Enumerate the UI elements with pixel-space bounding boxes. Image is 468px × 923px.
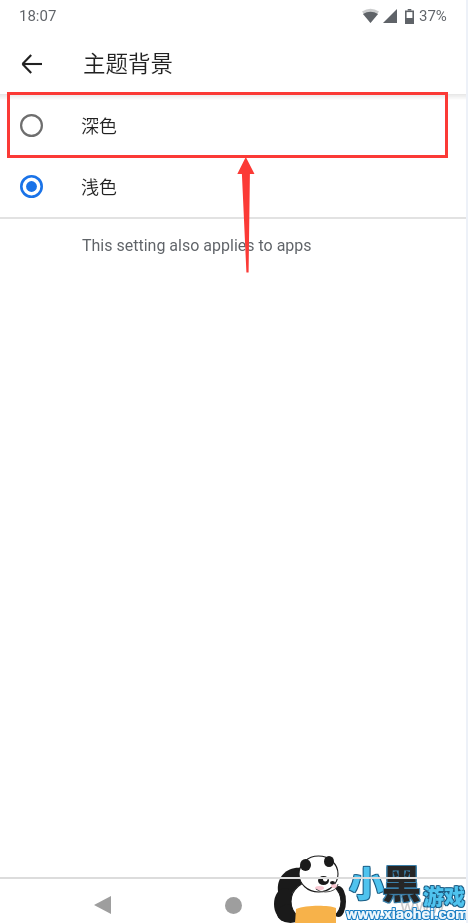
staticText: 37% xyxy=(419,7,447,25)
staticText: 戏 xyxy=(443,879,464,909)
staticText: 黑 xyxy=(383,853,423,909)
staticText: www.xiaohei.com xyxy=(347,905,468,923)
staticText: 18:07 xyxy=(19,7,57,25)
staticText: 主题背景 xyxy=(83,46,174,79)
staticText: www.xiaohei.com xyxy=(347,904,468,922)
staticText: 黑 xyxy=(382,854,422,910)
staticText: 游 xyxy=(422,880,443,910)
staticText: www.xiaohei.com xyxy=(347,906,468,923)
staticText: 黑 xyxy=(381,853,421,909)
staticText: 游 xyxy=(423,881,444,911)
staticText: www.xiaohei.com xyxy=(346,904,468,922)
staticText: 小 xyxy=(349,855,385,906)
staticText: 戏 xyxy=(444,880,465,910)
staticText: www.xiaohei.com xyxy=(346,905,468,923)
staticText: 游 xyxy=(424,880,445,910)
staticText: 黑 xyxy=(381,854,421,910)
staticText: 游 xyxy=(423,880,444,910)
staticText: 小 xyxy=(349,857,385,908)
staticText: www.xiaohei.com xyxy=(345,904,468,922)
staticText: 黑 xyxy=(383,852,423,908)
staticText: 游 xyxy=(422,881,443,911)
button[interactable]: Home xyxy=(213,885,253,923)
staticText: 黑 xyxy=(383,854,423,910)
staticText: 小 xyxy=(350,857,386,908)
staticText: 游 xyxy=(423,879,444,909)
staticText: 小 xyxy=(348,857,384,908)
staticText: 小 xyxy=(349,856,385,907)
staticText: www.xiaohei.com xyxy=(345,906,468,923)
staticText: 戏 xyxy=(444,881,465,911)
staticText: 戏 xyxy=(443,881,464,911)
staticText: 戏 xyxy=(445,880,466,910)
staticText: 小 xyxy=(348,856,384,907)
staticText: 戏 xyxy=(443,880,464,910)
button[interactable]: Back xyxy=(82,885,122,923)
button[interactable]: 深色 xyxy=(0,95,468,157)
button[interactable]: Back xyxy=(11,43,53,85)
staticText: 戏 xyxy=(444,879,465,909)
staticText: 小 xyxy=(350,855,386,906)
staticText: 深色 xyxy=(81,112,117,138)
staticText: 戏 xyxy=(445,881,466,911)
staticText: www. xyxy=(400,894,450,917)
staticText: This setting also applies to apps xyxy=(82,236,312,255)
staticText: 黑 xyxy=(382,852,422,908)
staticText: 游 xyxy=(424,881,445,911)
staticText: 小 xyxy=(350,856,386,907)
staticText: 游 xyxy=(424,879,445,909)
staticText: www.xiaohei.com xyxy=(345,905,468,923)
staticText: 小 xyxy=(348,855,384,906)
staticText: 浅色 xyxy=(81,173,117,199)
staticText: 游 xyxy=(422,879,443,909)
staticText: 黑 xyxy=(381,852,421,908)
button[interactable]: 浅色 xyxy=(0,157,468,217)
staticText: 戏 xyxy=(445,879,466,909)
staticText: www.xiaohei.com xyxy=(346,906,468,923)
staticText: 黑 xyxy=(382,853,422,909)
